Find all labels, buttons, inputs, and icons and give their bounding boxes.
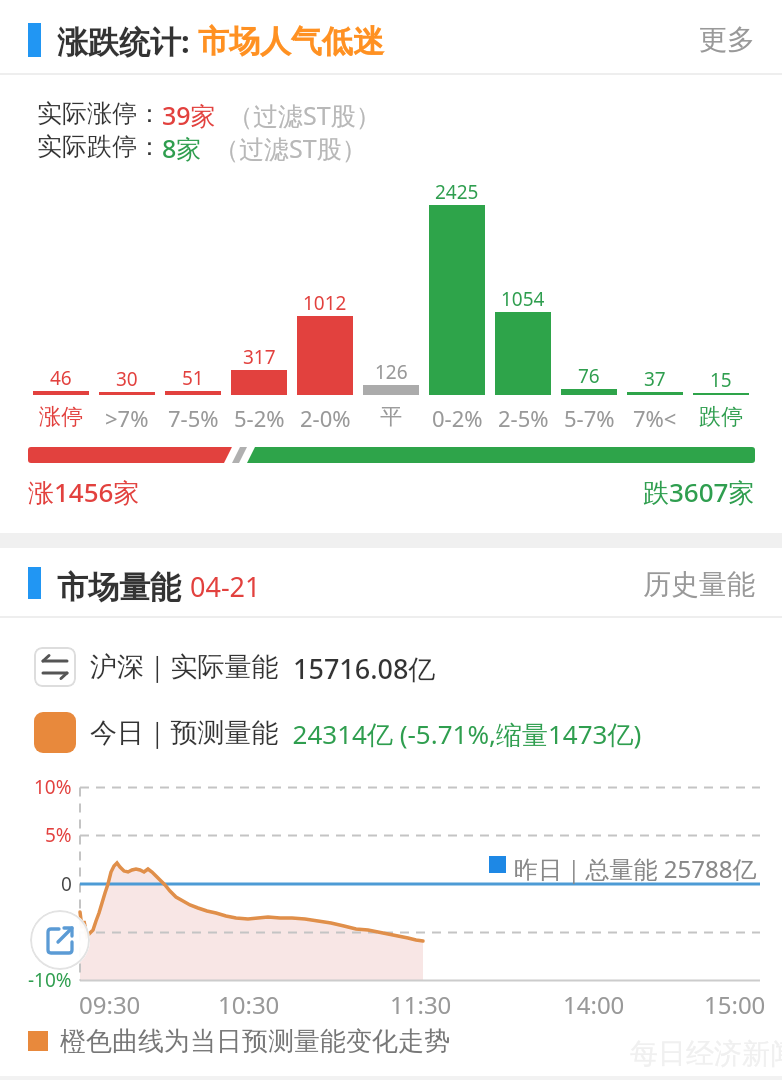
button[interactable]: 涨停 [28, 403, 94, 431]
staticText: 市场人气低迷 [198, 22, 384, 61]
staticText: 2-0% [300, 403, 351, 433]
staticText: 0 [61, 871, 72, 897]
staticText: 5-7% [564, 403, 615, 433]
button[interactable] [34, 712, 76, 753]
button[interactable]: 平 [358, 403, 424, 431]
staticText: 11:30 [390, 988, 452, 1021]
button[interactable]: 5-2% [226, 403, 292, 433]
staticText: 126 [375, 359, 408, 385]
staticText: 涨跌统计: [57, 20, 198, 62]
staticText: 2-5% [498, 403, 549, 433]
staticText: 每日经济新闻 [630, 1036, 782, 1071]
staticText: 5-2% [234, 403, 285, 433]
button[interactable]: 2-0% [292, 403, 358, 433]
staticText: 7%< [633, 403, 677, 433]
button[interactable]: >7% [94, 403, 160, 433]
staticText: 涨停 [39, 403, 83, 431]
staticText: 沪深｜实际量能 [90, 650, 279, 684]
staticText: 5% [45, 822, 72, 848]
staticText: 实际跌停： [37, 131, 162, 162]
staticText: 15 [710, 367, 732, 393]
button[interactable]: 2-5% [490, 403, 556, 433]
staticText: （过滤ST股） [214, 131, 367, 165]
staticText: 30 [116, 366, 138, 392]
button[interactable]: 更多 [699, 22, 755, 57]
button[interactable]: 7-5% [160, 403, 226, 433]
staticText: 10% [34, 774, 72, 800]
staticText: 橙色曲线为当日预测量能变化走势 [60, 1025, 450, 1058]
staticText: >7% [105, 403, 149, 433]
staticText: 1012 [303, 290, 347, 316]
staticText: 39家 [162, 98, 216, 132]
staticText: 8家 [162, 131, 202, 165]
staticText: 24314亿 (-5.71%,缩量1473亿) [279, 716, 642, 752]
staticText: 今日｜预测量能 [90, 716, 279, 750]
staticText: （过滤ST股） [228, 98, 381, 132]
staticText: 76 [578, 363, 600, 389]
button[interactable] [34, 647, 76, 687]
staticText: 跌3607家 [643, 474, 755, 510]
staticText: 1054 [501, 286, 545, 312]
staticText: 跌停 [699, 403, 743, 431]
staticText: 更多 [699, 22, 755, 57]
staticText: 实际涨停： [37, 98, 162, 129]
staticText: 10:30 [218, 988, 280, 1021]
staticText: 15716.08亿 [279, 650, 436, 687]
staticText: 平 [380, 403, 402, 431]
button[interactable]: 历史量能 [643, 567, 755, 602]
button[interactable]: 涨跌统计: [57, 20, 384, 62]
staticText: 15:00 [704, 988, 766, 1021]
button[interactable]: 市场量能 [57, 565, 261, 607]
staticText: 市场量能 [57, 565, 190, 607]
staticText: 涨1456家 [28, 474, 140, 510]
staticText: -10% [28, 967, 72, 993]
staticText: 317 [243, 344, 276, 370]
button[interactable]: 5-7% [556, 403, 622, 433]
button[interactable]: 跌停 [688, 403, 754, 431]
button[interactable]: 0-2% [424, 403, 490, 433]
staticText: 51 [182, 365, 204, 391]
staticText: 04-21 [190, 568, 261, 605]
staticText: 09:30 [79, 988, 141, 1021]
staticText: 0-2% [432, 403, 483, 433]
staticText: 历史量能 [643, 567, 755, 602]
button[interactable] [30, 910, 90, 970]
staticText: 昨日｜总量能 25788亿 [514, 852, 757, 885]
button[interactable]: 7%< [622, 403, 688, 433]
staticText: 46 [50, 365, 72, 391]
staticText: 14:00 [563, 988, 625, 1021]
staticText: 2425 [435, 179, 479, 205]
staticText: 7-5% [168, 403, 219, 433]
staticText: 37 [644, 366, 666, 392]
